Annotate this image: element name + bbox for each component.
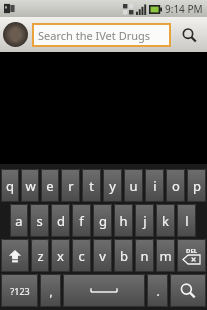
button[interactable]: w: [21, 169, 39, 202]
staticText: h: [119, 212, 128, 230]
staticText: DEL: [186, 247, 198, 255]
staticText: s: [36, 212, 43, 230]
button[interactable]: l: [177, 204, 196, 237]
button[interactable]: v: [93, 239, 112, 272]
button[interactable]: q: [1, 169, 19, 202]
staticText: f: [79, 212, 84, 230]
staticText: ,: [49, 283, 53, 299]
staticText: o: [172, 177, 180, 195]
button[interactable]: u: [124, 169, 143, 202]
staticText: 9:14 PM: [165, 2, 203, 16]
staticText: a: [15, 212, 23, 230]
staticText: Search the IVet Drugs: [38, 28, 151, 43]
staticText: x: [57, 247, 64, 265]
button[interactable]: d: [51, 204, 70, 237]
staticText: i: [153, 177, 157, 195]
staticText: g: [99, 212, 107, 230]
button[interactable]: z: [31, 239, 49, 272]
button[interactable]: App icon: [3, 22, 28, 47]
staticText: j: [143, 212, 147, 230]
button[interactable]: ?123: [1, 274, 38, 307]
button[interactable]: m: [156, 239, 175, 272]
button[interactable]: o: [166, 169, 185, 202]
button[interactable]: g: [93, 204, 112, 237]
staticText: w: [25, 177, 36, 195]
staticText: c: [78, 247, 85, 265]
staticText: ?123: [10, 285, 30, 297]
button[interactable]: Search: [174, 21, 204, 49]
button[interactable]: n: [135, 239, 154, 272]
staticText: p: [193, 177, 201, 195]
staticText: n: [140, 247, 149, 265]
button[interactable]: Space: [63, 274, 145, 307]
button[interactable]: j: [135, 204, 154, 237]
button[interactable]: f: [72, 204, 91, 237]
staticText: k: [162, 212, 169, 230]
staticText: t: [89, 177, 94, 195]
button[interactable]: ,: [40, 274, 61, 307]
button[interactable]: Search: [170, 274, 206, 307]
button[interactable]: c: [72, 239, 91, 272]
staticText: r: [68, 177, 74, 195]
button[interactable]: Delete: [177, 239, 206, 272]
button[interactable]: .: [147, 274, 168, 307]
staticText: l: [185, 212, 189, 230]
staticText: m: [159, 247, 172, 265]
staticText: y: [109, 177, 116, 195]
button[interactable]: h: [114, 204, 133, 237]
staticText: b: [120, 247, 128, 265]
button[interactable]: i: [145, 169, 164, 202]
button[interactable]: x: [51, 239, 70, 272]
button[interactable]: Search the IVet Drugs: [38, 23, 171, 47]
button[interactable]: Shift: [1, 239, 29, 272]
button[interactable]: t: [82, 169, 101, 202]
button[interactable]: p: [187, 169, 206, 202]
staticText: d: [57, 212, 65, 230]
button[interactable]: y: [103, 169, 122, 202]
button[interactable]: b: [114, 239, 133, 272]
staticText: q: [6, 177, 14, 195]
button[interactable]: r: [61, 169, 80, 202]
button[interactable]: k: [156, 204, 175, 237]
staticText: v: [99, 247, 106, 265]
button[interactable]: a: [10, 204, 28, 237]
staticText: .: [156, 283, 160, 299]
button[interactable]: s: [30, 204, 49, 237]
button[interactable]: e: [41, 169, 59, 202]
staticText: z: [37, 247, 44, 265]
staticText: u: [129, 177, 138, 195]
staticText: e: [46, 177, 54, 195]
